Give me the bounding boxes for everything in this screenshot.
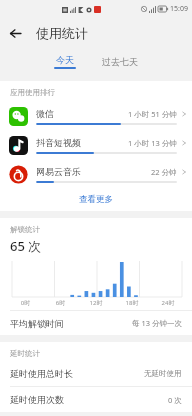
staticText: 无延时使用 <box>144 369 182 378</box>
staticText: 6时 <box>43 299 78 307</box>
staticText: 15:09 <box>170 4 188 14</box>
staticText: 每 13 分钟一次 <box>132 318 182 328</box>
button[interactable]: 抖音短视频 <box>0 131 192 160</box>
staticText: 过去七天 <box>102 56 138 67</box>
staticText: 微信 <box>36 108 54 119</box>
button[interactable]: 延时使用次数 <box>0 387 192 412</box>
staticText: 延时使用总时长 <box>10 368 73 379</box>
staticText: 网易云音乐 <box>36 166 81 177</box>
staticText: 查看更多 <box>79 194 113 205</box>
button[interactable]: 今天 <box>48 54 82 69</box>
staticText: 延时使用次数 <box>10 394 64 405</box>
button[interactable]: 网易云音乐 <box>0 160 192 189</box>
staticText: 22 分钟 <box>151 167 177 177</box>
staticText: 0时 <box>8 299 43 307</box>
button[interactable]: 平均解锁时间 <box>0 311 192 335</box>
button[interactable]: Back <box>0 18 30 48</box>
button[interactable]: 微信 <box>0 102 192 131</box>
button[interactable]: 延时使用总时长 <box>0 361 192 386</box>
staticText: 今天 <box>56 54 74 65</box>
staticText: 65 次 <box>10 237 42 255</box>
staticText: 延时统计 <box>10 349 40 358</box>
staticText: 1 小时 13 分钟 <box>128 138 177 148</box>
staticText: 平均解锁时间 <box>10 318 64 329</box>
staticText: 12时 <box>78 299 114 307</box>
staticText: 解锁统计 <box>10 225 40 234</box>
staticText: 1 小时 51 分钟 <box>128 109 177 119</box>
button[interactable]: 过去七天 <box>96 54 144 69</box>
staticText: 18时 <box>114 299 150 307</box>
staticText: 0 次 <box>168 395 182 405</box>
staticText: 24时 <box>150 299 186 307</box>
staticText: 抖音短视频 <box>36 137 81 148</box>
button[interactable]: 查看更多 <box>0 189 192 209</box>
staticText: 应用使用排行 <box>10 88 55 97</box>
staticText: 使用统计 <box>36 25 88 41</box>
